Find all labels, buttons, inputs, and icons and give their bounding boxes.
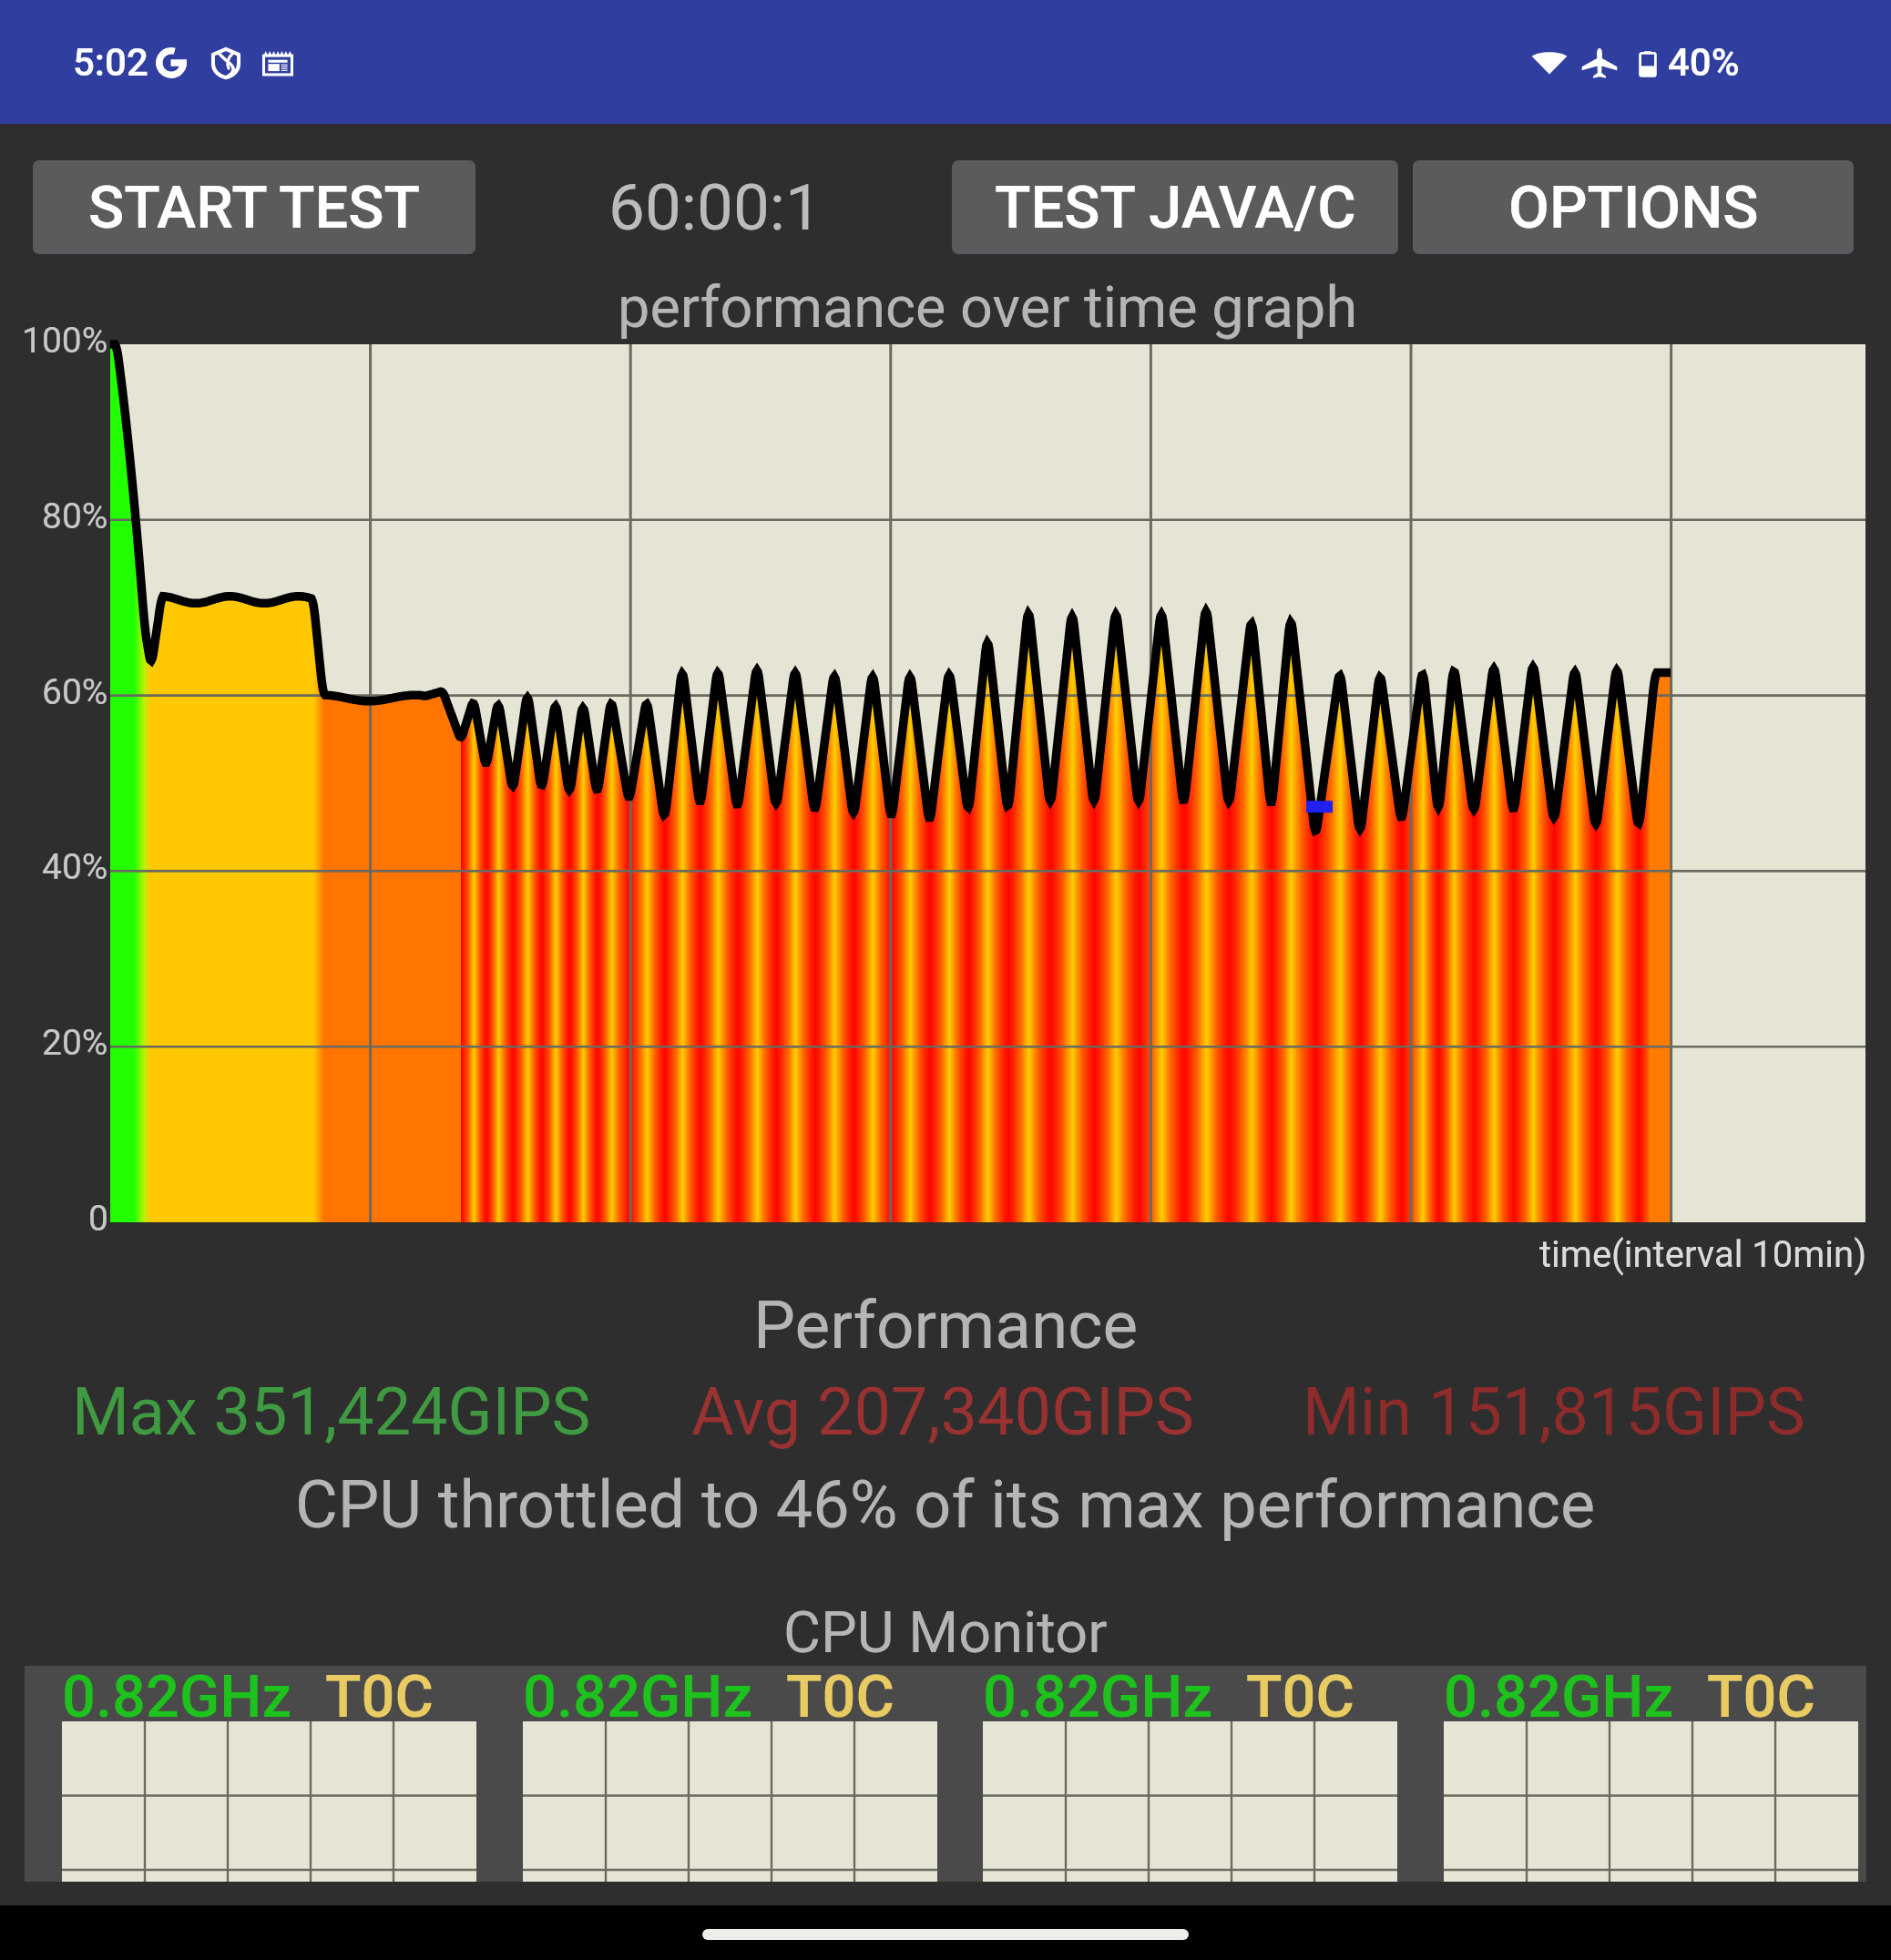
staticText: 100% (22, 320, 108, 362)
staticText: 40% (42, 846, 108, 888)
staticText: T0C (325, 1662, 434, 1731)
staticText: T0C (786, 1662, 894, 1731)
staticText: 0.82GHz (1444, 1662, 1674, 1731)
button[interactable]: OPTIONS (1413, 160, 1854, 254)
staticText: 5:02 (73, 40, 148, 85)
staticText: 60:00:1 (608, 169, 822, 245)
button[interactable]: CPU core 1 (486, 1666, 946, 1882)
staticText: Avg 207,340GIPS (691, 1373, 1194, 1450)
staticText: T0C (1246, 1662, 1354, 1731)
other: Battery 40 percent (1630, 45, 1666, 81)
staticText: Performance (753, 1286, 1139, 1364)
staticText: performance over time graph (618, 274, 1358, 342)
button[interactable]: START TEST (33, 160, 475, 254)
staticText: 0.82GHz (983, 1662, 1213, 1731)
staticText: 0.82GHz (523, 1662, 753, 1731)
staticText: 0 (88, 1198, 108, 1240)
other: Security (209, 46, 243, 80)
staticText: 60% (42, 671, 108, 713)
staticText: CPU Monitor (783, 1599, 1108, 1667)
button[interactable]: CPU core 3 (1406, 1666, 1867, 1882)
staticText: time(interval 10min) (1539, 1233, 1867, 1276)
staticText: Max 351,424GIPS (72, 1373, 591, 1450)
other: News (261, 46, 294, 79)
staticText: START TEST (88, 173, 421, 242)
staticText: Min 151,815GIPS (1303, 1373, 1805, 1450)
other: Wi-Fi (1530, 44, 1569, 82)
staticText: T0C (1707, 1662, 1815, 1731)
staticText: 20% (42, 1022, 108, 1064)
button[interactable]: CPU core 0 (25, 1666, 486, 1882)
other: Airplane mode (1580, 44, 1619, 82)
staticText: 40% (1668, 40, 1740, 85)
button[interactable]: Home (702, 1924, 1189, 1945)
button[interactable]: CPU core 2 (945, 1666, 1406, 1882)
staticText: 0.82GHz (62, 1662, 292, 1731)
staticText: 80% (42, 495, 108, 537)
other: Google (156, 47, 187, 78)
button[interactable]: TEST JAVA/C (952, 160, 1398, 254)
staticText: OPTIONS (1508, 173, 1759, 242)
staticText: CPU throttled to 46% of its max performa… (295, 1466, 1596, 1543)
staticText: TEST JAVA/C (995, 173, 1356, 242)
